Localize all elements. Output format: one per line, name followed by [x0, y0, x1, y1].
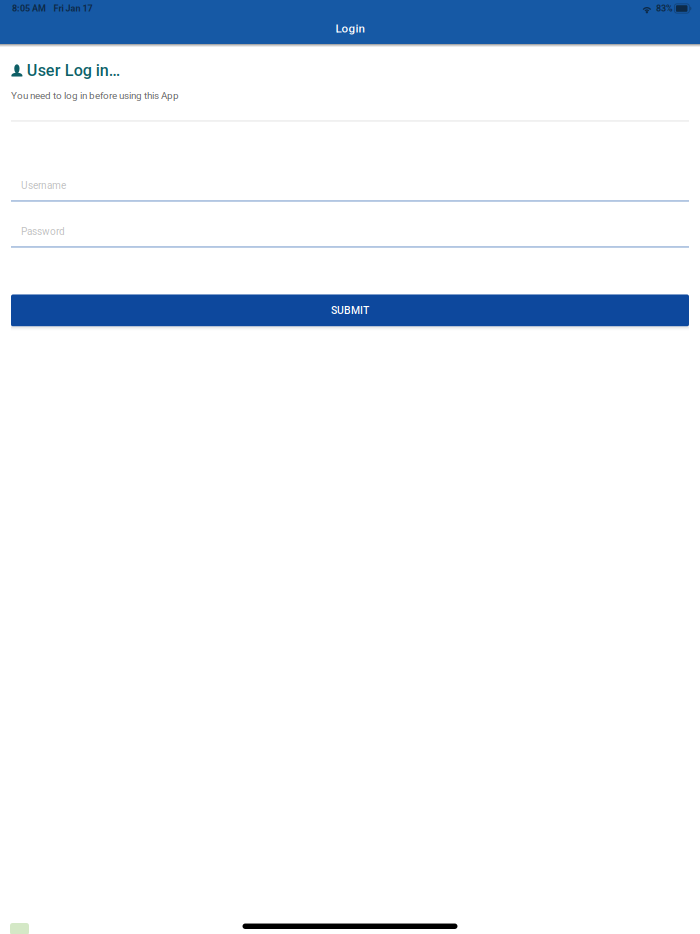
staticText: 8:05 AM	[12, 3, 46, 14]
button[interactable]: SUBMIT	[11, 294, 689, 330]
staticText: SUBMIT	[331, 304, 369, 317]
staticText: User Log in…	[27, 61, 120, 80]
staticText: You need to log in before using this App	[11, 90, 179, 101]
button[interactable]: Username	[11, 170, 689, 201]
staticText: Login	[335, 22, 364, 35]
staticText: Fri Jan 17	[53, 3, 92, 14]
staticText: 83%	[656, 3, 673, 14]
button[interactable]: Password	[11, 216, 689, 247]
staticText: Password	[21, 226, 65, 237]
staticText: Username	[21, 180, 66, 191]
